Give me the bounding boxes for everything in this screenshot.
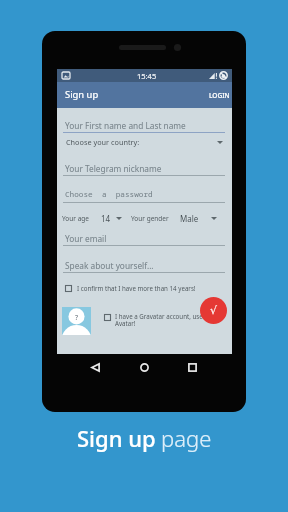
button[interactable]: I have a Gravatar account, use my Avatar… (104, 312, 214, 328)
staticText: Sign up (65, 88, 99, 101)
button[interactable]: Confirm sign up (200, 297, 227, 324)
staticText: Your First name and Last name (65, 120, 186, 131)
staticText: ? (75, 313, 79, 323)
staticText: Your gender (131, 214, 169, 223)
staticText: Your email (65, 233, 107, 244)
staticText: page (161, 423, 212, 453)
staticText: Choose your country: (66, 137, 140, 147)
button[interactable]: Recent apps (182, 357, 203, 378)
staticText: √ (210, 304, 218, 317)
staticText: Your Telegram nickname (65, 163, 162, 174)
staticText: Male (180, 213, 199, 224)
staticText: Choose a password (65, 189, 153, 199)
staticText: Sign up (77, 423, 156, 453)
button[interactable]: I confirm that I have more than 14 years… (65, 284, 196, 292)
staticText: I confirm that I have more than 14 years… (77, 284, 196, 292)
staticText: 14 (101, 213, 111, 224)
button[interactable]: Choose your country: (66, 136, 225, 148)
staticText: LOGIN (209, 91, 230, 100)
button[interactable]: Back (85, 357, 106, 378)
staticText: 15:45 (137, 71, 157, 81)
staticText: Your age (62, 214, 89, 223)
button[interactable]: Home (134, 357, 155, 378)
button[interactable]: LOGIN (203, 86, 232, 105)
staticText: Speak about yourself... (65, 260, 154, 271)
staticText: I have a Gravatar account, use my Avatar… (115, 312, 214, 328)
